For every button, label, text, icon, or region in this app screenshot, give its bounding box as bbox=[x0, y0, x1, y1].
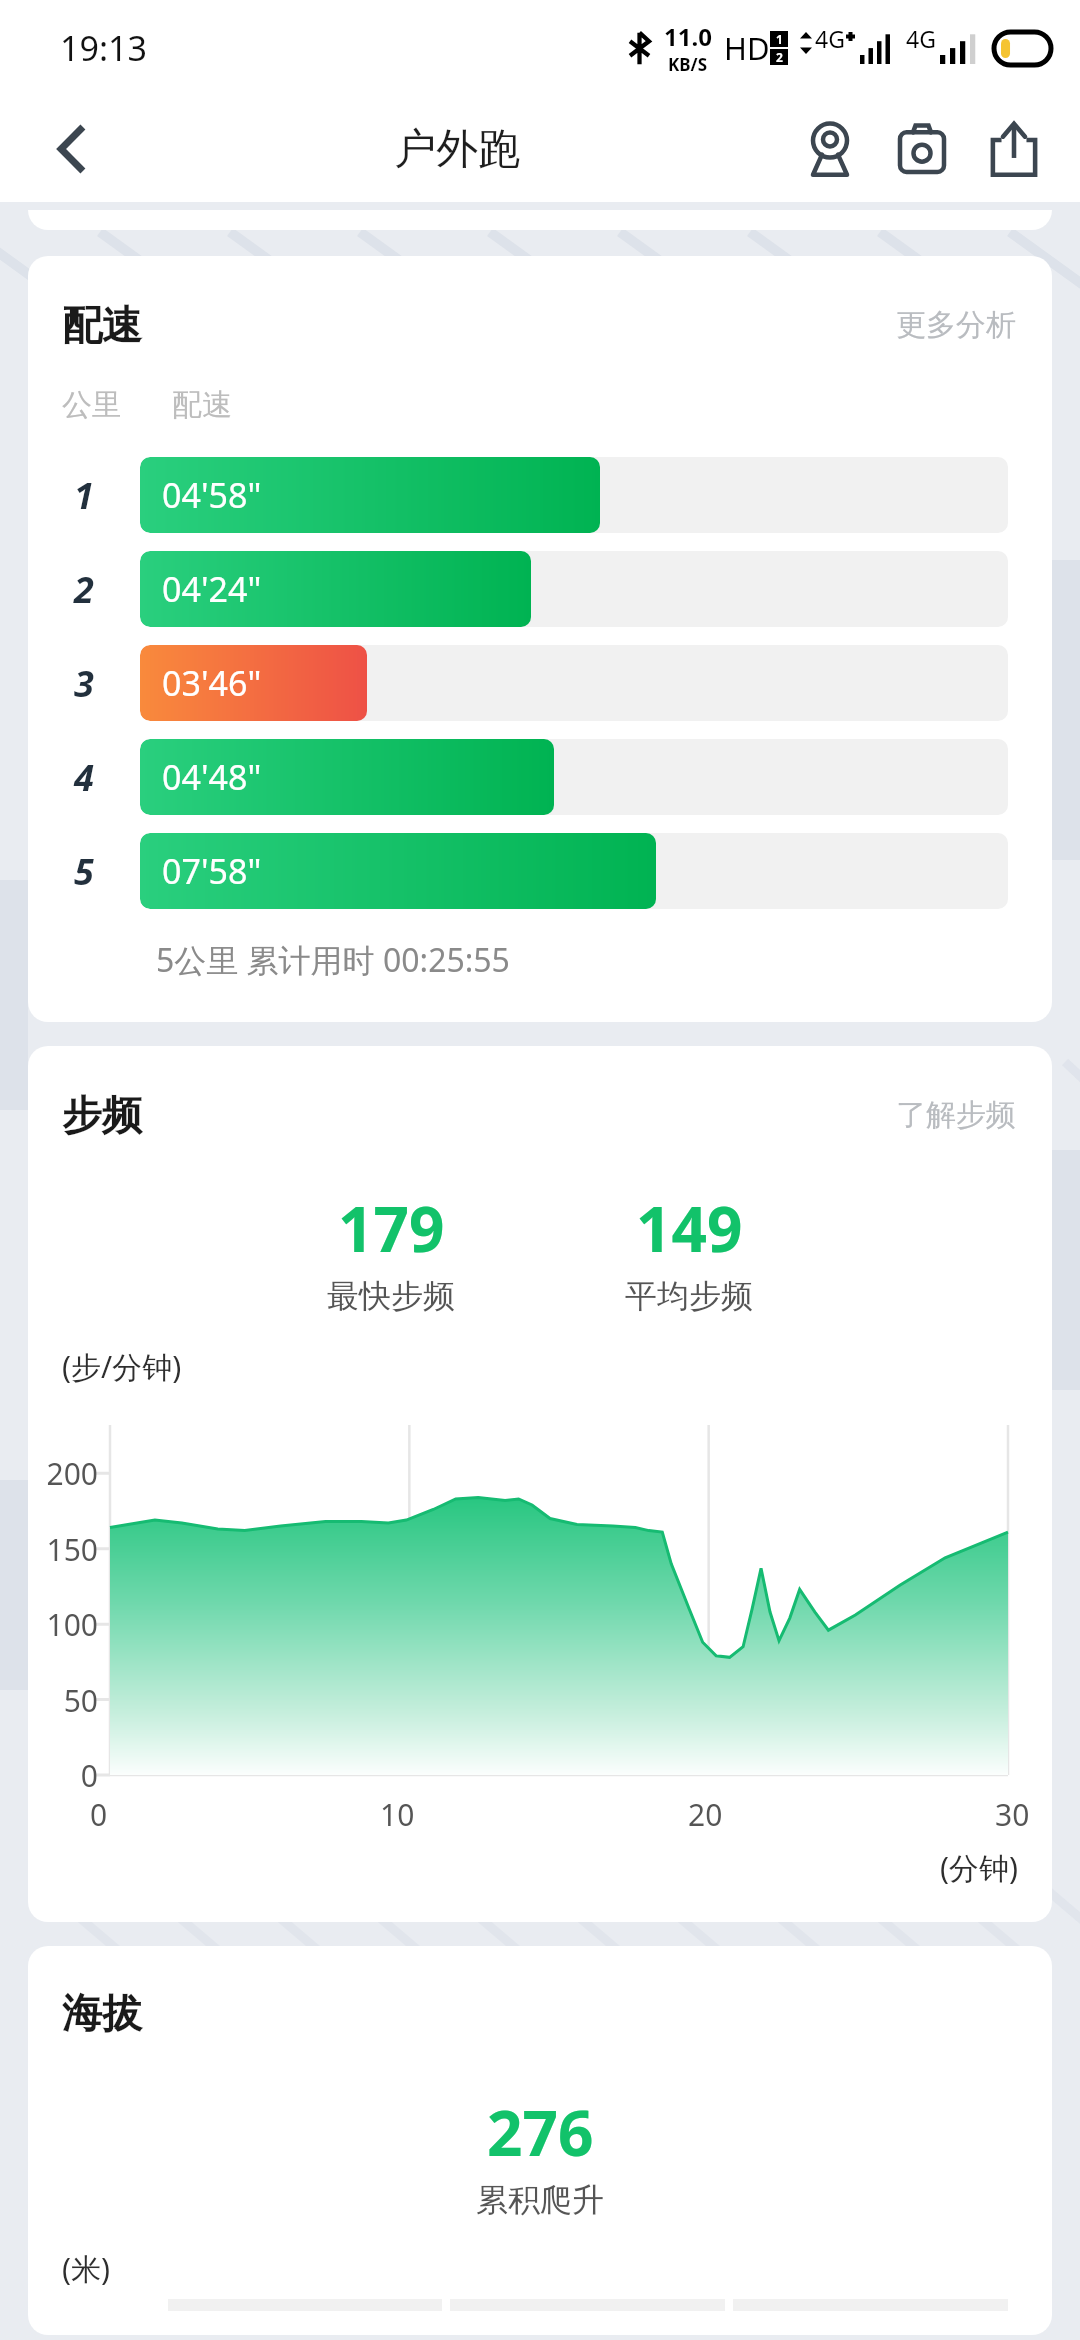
staticText: 公里 bbox=[62, 386, 122, 424]
staticText: 0 bbox=[36, 1755, 98, 1796]
button[interactable]: Map location bbox=[784, 103, 876, 195]
staticText: 2 bbox=[776, 49, 783, 65]
staticText: 07'58" bbox=[162, 848, 262, 894]
staticText: 04'24" bbox=[162, 566, 262, 612]
staticText: 海拔 bbox=[62, 1988, 142, 2038]
button[interactable]: 更多分析 bbox=[888, 298, 1024, 352]
button[interactable]: 1 bbox=[28, 450, 1052, 540]
staticText: 04'58" bbox=[162, 472, 262, 518]
staticText: 276 bbox=[487, 2090, 594, 2174]
staticText: 4G bbox=[815, 23, 845, 54]
staticText: 100 bbox=[36, 1604, 98, 1645]
staticText: 20 bbox=[688, 1794, 723, 1835]
staticText: 5 bbox=[74, 847, 94, 896]
staticText: 配速 bbox=[62, 300, 142, 350]
button[interactable]: 2 bbox=[28, 544, 1052, 634]
button[interactable]: 5 bbox=[28, 826, 1052, 916]
staticText: 04'48" bbox=[162, 754, 262, 800]
staticText: (分钟) bbox=[940, 1847, 1018, 1888]
staticText: 50 bbox=[36, 1680, 98, 1721]
staticText: 了解步频 bbox=[896, 1096, 1016, 1134]
staticText: 累积爬升 bbox=[476, 2180, 604, 2220]
staticText: 30 bbox=[995, 1794, 1030, 1835]
staticText: 150 bbox=[36, 1529, 98, 1570]
staticText: 1 bbox=[776, 31, 783, 47]
staticText: 11.0 bbox=[664, 20, 712, 53]
staticText: (米) bbox=[62, 2248, 110, 2289]
staticText: 平均步频 bbox=[625, 1276, 753, 1316]
staticText: (步/分钟) bbox=[62, 1346, 182, 1387]
staticText: 200 bbox=[36, 1453, 98, 1494]
staticText: 10 bbox=[380, 1794, 415, 1835]
staticText: 最快步频 bbox=[327, 1276, 455, 1316]
staticText: 179 bbox=[338, 1186, 445, 1270]
button[interactable]: 4 bbox=[28, 732, 1052, 822]
button[interactable]: Back bbox=[28, 105, 116, 193]
staticText: 5公里 累计用时 00:25:55 bbox=[156, 938, 510, 982]
staticText: 19:13 bbox=[60, 25, 147, 71]
button[interactable]: 了解步频 bbox=[888, 1088, 1024, 1142]
button[interactable]: 3 bbox=[28, 638, 1052, 728]
button[interactable]: Camera bbox=[876, 103, 968, 195]
staticText: 步频 bbox=[62, 1090, 142, 1140]
button[interactable]: Share bbox=[968, 103, 1060, 195]
staticText: 更多分析 bbox=[896, 306, 1016, 344]
staticText: 4G bbox=[906, 23, 936, 54]
staticText: 03'46" bbox=[162, 660, 262, 706]
staticText: 配速 bbox=[172, 386, 232, 424]
staticText: 2 bbox=[74, 565, 94, 614]
staticText: 0 bbox=[90, 1794, 108, 1835]
staticText: HD bbox=[724, 27, 770, 69]
staticText: 1 bbox=[74, 471, 94, 520]
staticText: 3 bbox=[74, 659, 94, 708]
staticText: 149 bbox=[636, 1186, 743, 1270]
staticText: 户外跑 bbox=[394, 123, 520, 176]
staticText: 4 bbox=[74, 753, 94, 802]
staticText: KB/S bbox=[668, 53, 708, 76]
